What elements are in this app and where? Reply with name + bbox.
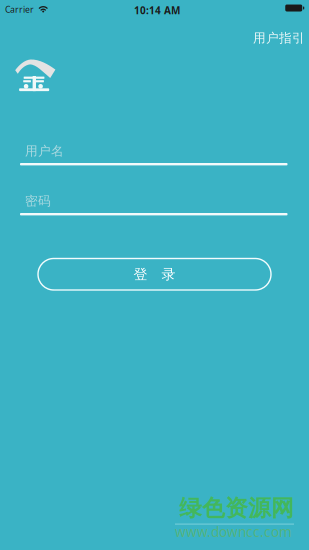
staticText: www.downcc.com [175, 522, 292, 541]
staticText: 用户指引 [253, 30, 305, 46]
staticText: 绿色资源网 [179, 494, 294, 523]
button[interactable]: 登 录 [38, 258, 271, 290]
staticText: Carrier [5, 3, 34, 15]
staticText: 登 录 [133, 265, 175, 283]
button[interactable]: 用户指引 [245, 23, 309, 53]
staticText: 用户名 [25, 143, 64, 159]
staticText: 密码 [25, 193, 51, 209]
staticText: 10:14 AM [134, 3, 180, 17]
